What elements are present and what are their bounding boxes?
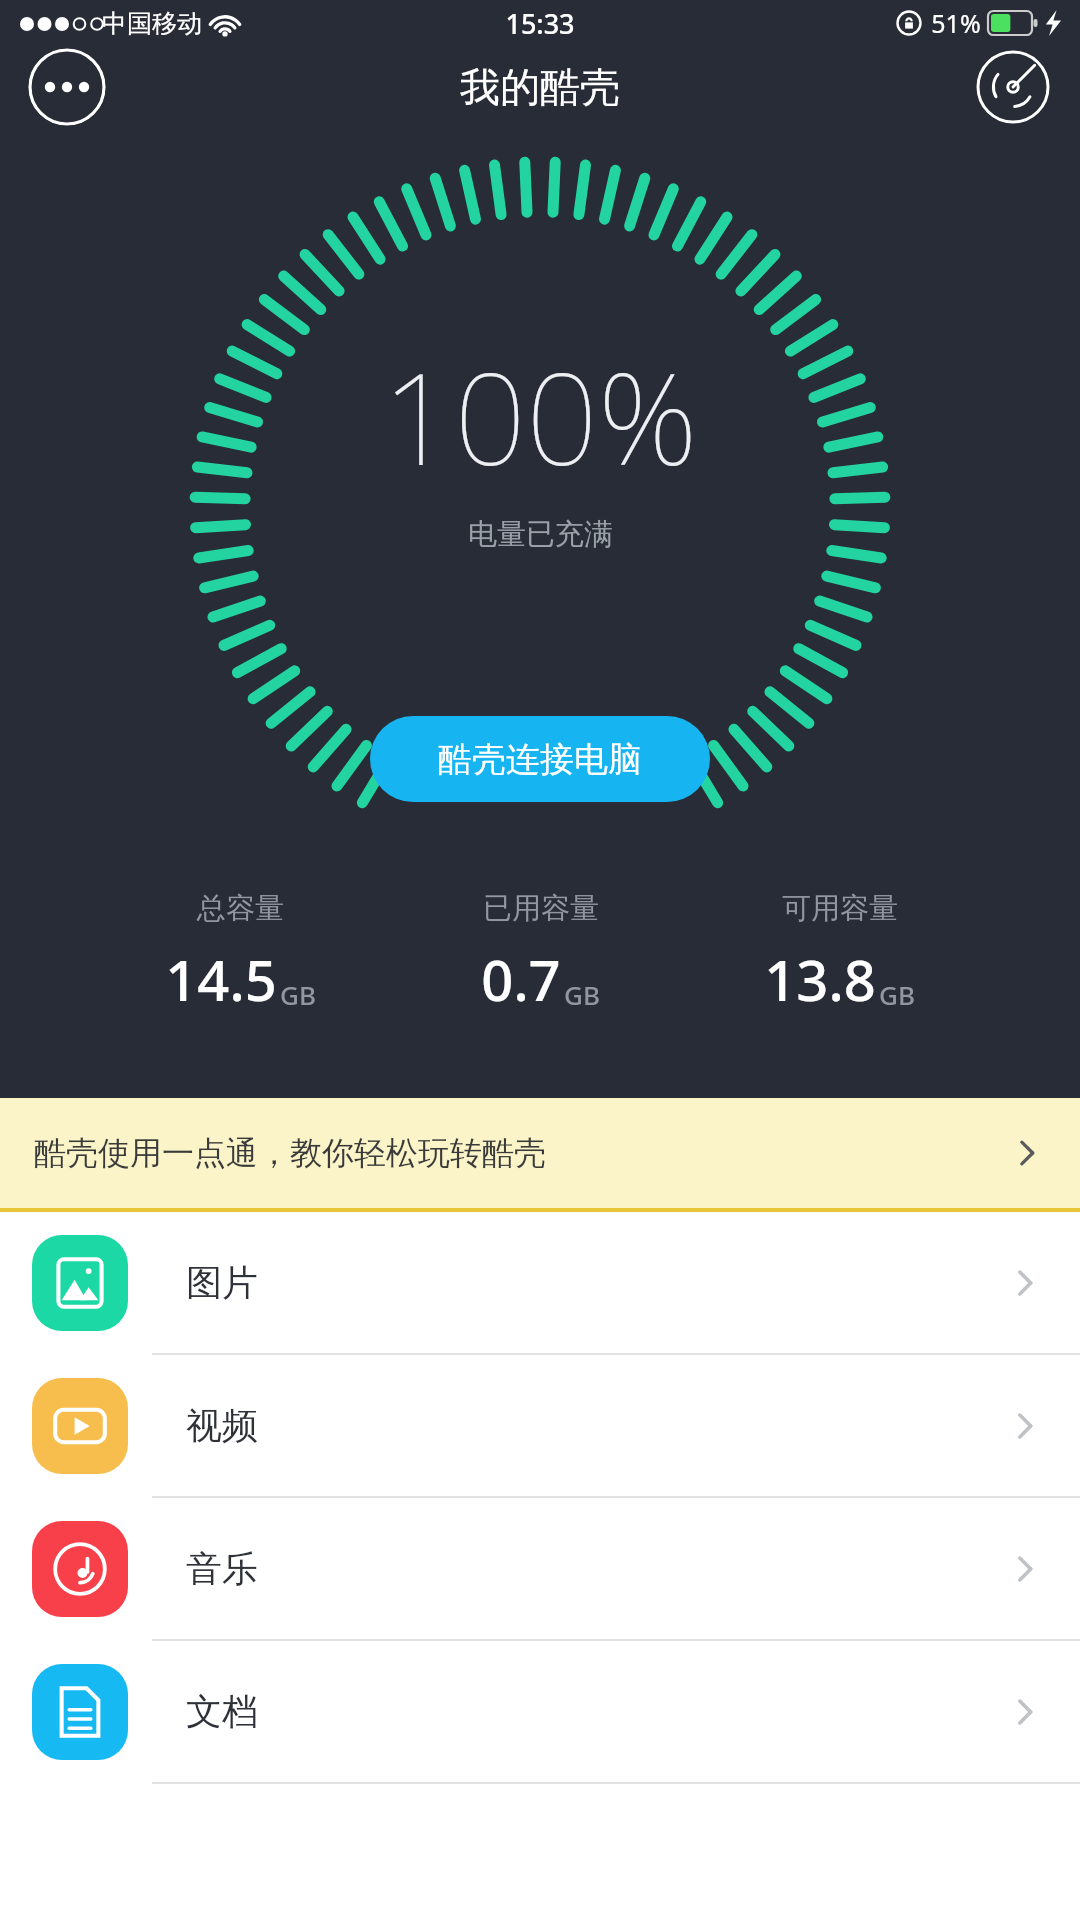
staticText: 13.8 [764, 941, 876, 1017]
staticText: 中国移动 [102, 8, 202, 39]
button[interactable]: 酷壳使用一点通，教你轻松玩转酷壳 [0, 1098, 1080, 1208]
button[interactable]: More options [28, 48, 106, 126]
staticText: 酷壳连接电脑 [438, 738, 642, 781]
staticText: 14.5 [165, 941, 277, 1017]
staticText: GB [564, 977, 600, 1012]
button[interactable]: Disc [974, 48, 1052, 126]
staticText: 电量已充满 [468, 516, 613, 553]
staticText: GB [879, 977, 915, 1012]
staticText: 图片 [186, 1260, 258, 1305]
staticText: 0.7 [481, 941, 561, 1017]
staticText: 文档 [186, 1689, 258, 1734]
staticText: 100% [382, 330, 698, 502]
button[interactable]: 视频 [0, 1355, 1080, 1496]
staticText: 我的酷壳 [460, 62, 620, 112]
staticText: GB [280, 977, 316, 1012]
staticText: 15:33 [505, 5, 575, 42]
staticText: 51% [931, 6, 981, 40]
staticText: 已用容量 [483, 890, 599, 927]
staticText: 总容量 [197, 890, 284, 927]
button[interactable]: 酷壳连接电脑 [370, 716, 710, 802]
staticText: 酷壳使用一点通，教你轻松玩转酷壳 [34, 1133, 546, 1173]
staticText: 音乐 [186, 1546, 258, 1591]
staticText: 视频 [186, 1403, 258, 1448]
button[interactable]: 图片 [0, 1212, 1080, 1353]
button[interactable]: 音乐 [0, 1498, 1080, 1639]
staticText: 可用容量 [782, 890, 898, 927]
button[interactable]: 文档 [0, 1641, 1080, 1782]
